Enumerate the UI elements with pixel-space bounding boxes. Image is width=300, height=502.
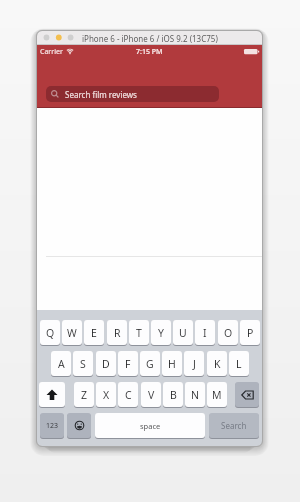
staticText: iPhone 6 - iPhone 6 / iOS 9.2 (13C75) xyxy=(82,33,218,44)
staticText: Carrier xyxy=(40,47,63,57)
staticText: Y xyxy=(158,326,164,340)
button[interactable]: V xyxy=(141,382,161,407)
button[interactable] xyxy=(39,382,65,407)
button[interactable]: Search xyxy=(209,413,259,438)
button[interactable]: X xyxy=(96,382,116,407)
staticText: X xyxy=(103,388,110,402)
staticText: Q xyxy=(46,326,55,340)
button[interactable]: A xyxy=(51,351,71,376)
staticText: P xyxy=(247,326,254,340)
staticText: U xyxy=(179,326,187,340)
staticText: H xyxy=(168,357,176,371)
staticText: M xyxy=(212,388,222,402)
staticText: S xyxy=(80,357,86,371)
staticText: V xyxy=(148,388,155,402)
button[interactable]: K xyxy=(207,351,227,376)
staticText: A xyxy=(58,357,65,371)
button[interactable]: I xyxy=(195,320,215,345)
staticText: D xyxy=(102,357,110,371)
staticText: Search film reviews xyxy=(65,89,137,100)
button[interactable]: J xyxy=(184,351,204,376)
button[interactable]: H xyxy=(162,351,182,376)
staticText: G xyxy=(146,357,154,371)
button[interactable]: Z xyxy=(74,382,94,407)
staticText: O xyxy=(224,326,233,340)
staticText: T xyxy=(136,326,142,340)
staticText: Search xyxy=(221,420,247,431)
staticText: C xyxy=(125,388,132,402)
staticText: F xyxy=(125,357,131,371)
button[interactable]: M xyxy=(207,382,227,407)
staticText: space xyxy=(140,421,161,431)
button[interactable]: Q xyxy=(40,320,60,345)
button[interactable]: L xyxy=(229,351,249,376)
staticText: 123 xyxy=(46,421,59,431)
staticText: W xyxy=(67,326,77,340)
staticText: N xyxy=(191,388,199,402)
button[interactable]: Y xyxy=(151,320,171,345)
button[interactable]: P xyxy=(240,320,260,345)
staticText: I xyxy=(203,326,207,340)
button[interactable]: space xyxy=(95,413,205,438)
button[interactable]: D xyxy=(96,351,116,376)
staticText: J xyxy=(193,357,196,371)
button[interactable]: W xyxy=(62,320,82,345)
button[interactable]: N xyxy=(185,382,205,407)
button[interactable]: E xyxy=(84,320,104,345)
button[interactable]: R xyxy=(107,320,127,345)
button[interactable]: F xyxy=(118,351,138,376)
button[interactable]: T xyxy=(129,320,149,345)
button[interactable]: C xyxy=(118,382,138,407)
button[interactable] xyxy=(235,382,259,407)
button[interactable]: 123 xyxy=(40,413,64,438)
staticText: R xyxy=(114,326,121,340)
staticText: L xyxy=(236,357,242,371)
staticText: B xyxy=(170,388,177,402)
button[interactable]: G xyxy=(140,351,160,376)
staticText: Z xyxy=(81,388,88,402)
button[interactable]: Search film reviews xyxy=(46,86,219,102)
staticText: 7:15 PM xyxy=(136,47,163,57)
staticText: K xyxy=(214,357,221,371)
button[interactable]: U xyxy=(173,320,193,345)
button[interactable]: O xyxy=(218,320,238,345)
button[interactable] xyxy=(67,413,91,438)
staticText: E xyxy=(91,326,97,340)
button[interactable]: B xyxy=(163,382,183,407)
button[interactable]: S xyxy=(73,351,93,376)
